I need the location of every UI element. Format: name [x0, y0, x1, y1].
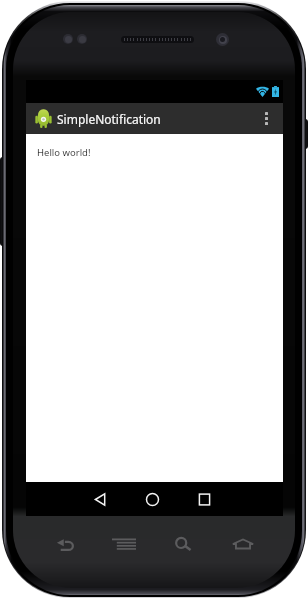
- button[interactable]: More options: [249, 103, 283, 134]
- button[interactable]: Home: [228, 529, 258, 559]
- button[interactable]: Back: [49, 529, 79, 559]
- staticText: Hello world!: [37, 146, 91, 159]
- button[interactable]: Recent apps: [191, 482, 217, 516]
- button[interactable]: Home: [139, 482, 165, 516]
- button[interactable]: Menu: [109, 529, 139, 559]
- staticText: SimpleNotification: [57, 111, 161, 127]
- button[interactable]: Search: [168, 529, 198, 559]
- button[interactable]: Back: [87, 482, 113, 516]
